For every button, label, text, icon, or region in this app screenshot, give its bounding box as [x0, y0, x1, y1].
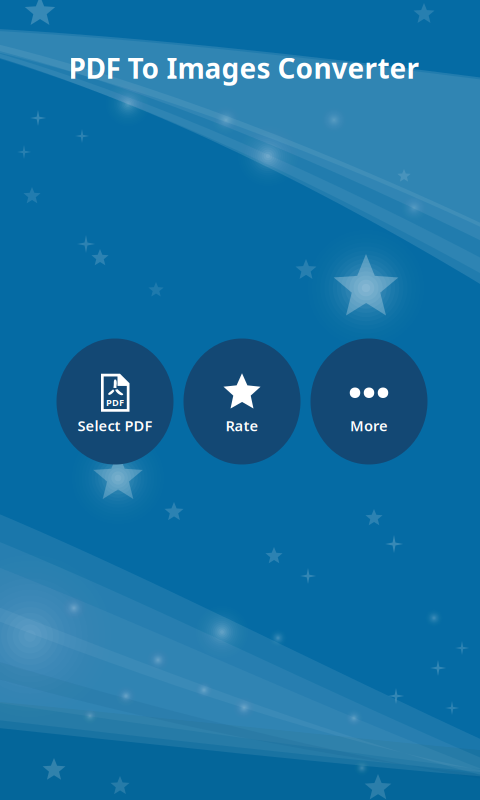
button[interactable]: Rate — [183, 338, 300, 464]
staticText: PDF — [106, 396, 124, 408]
button[interactable]: More — [310, 338, 427, 464]
staticText: Rate — [225, 416, 258, 435]
staticText: PDF To Images Converter — [68, 49, 419, 87]
staticText: More — [350, 416, 388, 435]
button[interactable]: Select PDF — [56, 338, 173, 464]
staticText: Select PDF — [77, 416, 152, 435]
